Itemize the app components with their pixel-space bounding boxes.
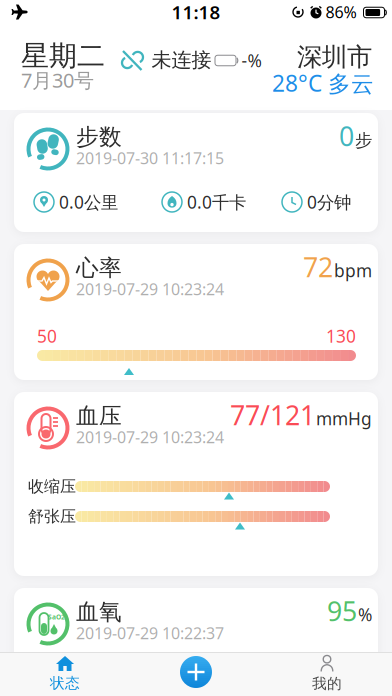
- staticText: 0.0公里: [59, 190, 118, 213]
- staticText: 0: [339, 118, 354, 154]
- staticText: 7月30号: [21, 67, 94, 93]
- staticText: 130: [326, 324, 356, 347]
- staticText: 77/121: [230, 397, 315, 433]
- staticText: 2019-07-29 10:23:24: [76, 278, 224, 300]
- staticText: 95: [327, 593, 357, 629]
- staticText: 0分钟: [307, 190, 351, 213]
- button[interactable]: 状态: [25, 653, 105, 695]
- staticText: 2019-07-29 10:23:24: [76, 426, 224, 448]
- button[interactable]: 我的: [287, 653, 367, 695]
- staticText: SaO2: [48, 613, 65, 621]
- staticText: 收缩压: [28, 477, 76, 496]
- staticText: mmHg: [316, 407, 372, 430]
- staticText: 血氧: [76, 598, 122, 626]
- button[interactable]: 步数: [14, 113, 378, 232]
- staticText: 我的: [312, 674, 342, 692]
- staticText: 舒张压: [28, 507, 76, 526]
- staticText: 状态: [50, 674, 80, 692]
- button[interactable]: 添加: [174, 651, 218, 693]
- staticText: 未连接: [151, 48, 211, 72]
- staticText: 50: [37, 324, 57, 347]
- staticText: 2019-07-30 11:17:15: [76, 147, 224, 169]
- staticText: 86%: [325, 1, 356, 23]
- staticText: 2019-07-29 10:22:37: [76, 622, 224, 644]
- button[interactable]: 心率: [14, 244, 378, 380]
- staticText: 步数: [76, 123, 122, 151]
- staticText: 步: [355, 130, 372, 151]
- staticText: 星期二: [21, 39, 105, 73]
- staticText: 0.0千卡: [187, 190, 246, 213]
- staticText: 深圳市: [297, 41, 372, 72]
- staticText: 心率: [76, 254, 122, 282]
- button[interactable]: 未连接: [120, 48, 211, 72]
- staticText: 28°C 多云: [272, 68, 374, 98]
- staticText: 11:18: [171, 0, 220, 24]
- staticText: -%: [241, 49, 261, 72]
- staticText: 血压: [76, 402, 122, 430]
- button[interactable]: 血压: [14, 392, 378, 576]
- staticText: bpm: [334, 259, 372, 282]
- staticText: %: [358, 603, 372, 626]
- staticText: 72: [303, 249, 333, 285]
- button[interactable]: SaO2: [14, 588, 378, 696]
